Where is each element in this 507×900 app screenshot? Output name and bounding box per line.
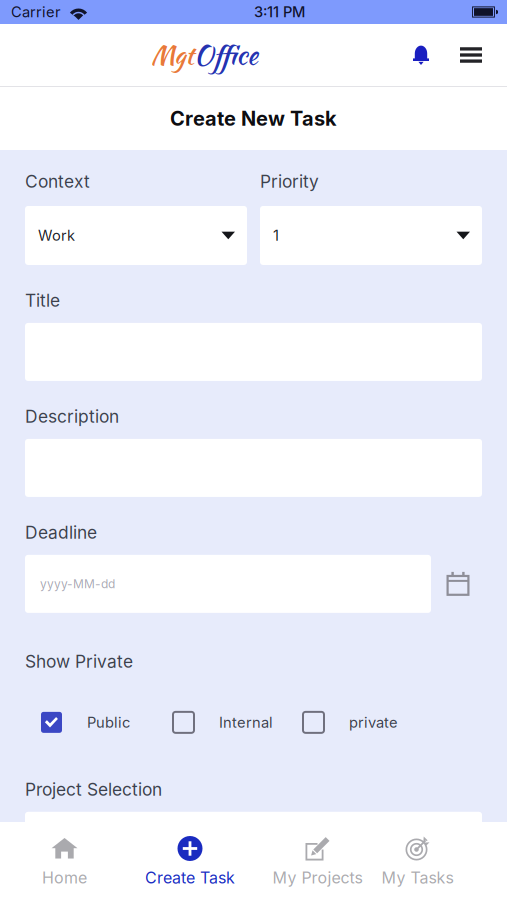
- staticText: Priority: [260, 171, 319, 192]
- staticText: Work: [38, 227, 75, 244]
- staticText: 3:11 PM: [254, 3, 305, 21]
- staticText: private: [349, 713, 398, 731]
- staticText: yyyy-MM-dd: [40, 577, 115, 591]
- staticText: Description: [25, 406, 119, 427]
- staticText: Title: [25, 290, 60, 311]
- staticText: Internal: [219, 713, 273, 731]
- button[interactable]: Public: [41, 712, 130, 733]
- staticText: Carrier: [11, 3, 61, 21]
- button[interactable]: My Tasks: [384, 822, 451, 900]
- staticText: My Tasks: [381, 868, 453, 887]
- button[interactable]: Work: [25, 206, 247, 265]
- staticText: Deadline: [25, 522, 97, 543]
- staticText: Create New Task: [170, 106, 337, 131]
- button[interactable]: Choose date: [446, 572, 470, 596]
- staticText: Create Task: [145, 868, 235, 887]
- staticText: Office: [194, 36, 258, 74]
- button[interactable]: private: [303, 712, 398, 733]
- button[interactable]: My Projects: [251, 822, 384, 900]
- staticText: Home: [42, 868, 87, 887]
- button[interactable]: 1: [260, 206, 482, 265]
- staticText: 1: [273, 227, 279, 244]
- staticText: My Projects: [272, 868, 362, 887]
- staticText: Mgt: [151, 37, 194, 73]
- button[interactable]: Create Task: [129, 822, 251, 900]
- button[interactable]: Menu: [451, 35, 491, 75]
- button[interactable]: Notifications: [401, 35, 441, 75]
- staticText: Show Private: [25, 651, 133, 672]
- staticText: Project Selection: [25, 779, 162, 800]
- button[interactable]: Internal: [173, 712, 273, 733]
- button[interactable]: Home: [0, 822, 129, 900]
- staticText: Context: [25, 171, 90, 192]
- staticText: Public: [87, 713, 130, 731]
